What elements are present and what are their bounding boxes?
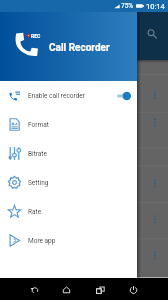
button[interactable]: Format <box>0 110 137 139</box>
staticText: More app <box>28 237 56 245</box>
staticText: Bitrate <box>28 150 47 158</box>
button[interactable]: Setting <box>0 168 137 197</box>
staticText: 10:14 <box>146 2 165 11</box>
button[interactable]: Rate <box>0 197 137 226</box>
staticText: Format <box>28 121 49 129</box>
staticText: REC <box>31 33 41 39</box>
button[interactable]: Back <box>0 278 42 300</box>
button[interactable]: Recents <box>84 278 126 300</box>
button[interactable]: Power <box>126 278 168 300</box>
button[interactable]: Home <box>42 278 84 300</box>
button[interactable]: Bitrate <box>0 139 137 168</box>
staticText: Call Recorder <box>49 42 110 54</box>
button[interactable]: Enable call recorder <box>0 81 137 110</box>
staticText: 75% <box>121 2 134 10</box>
staticText: Enable call recorder <box>28 92 85 100</box>
staticText: Rate <box>28 208 42 216</box>
button[interactable]: Search <box>144 26 160 42</box>
button[interactable]: More app <box>0 226 137 255</box>
staticText: Setting <box>28 179 49 187</box>
